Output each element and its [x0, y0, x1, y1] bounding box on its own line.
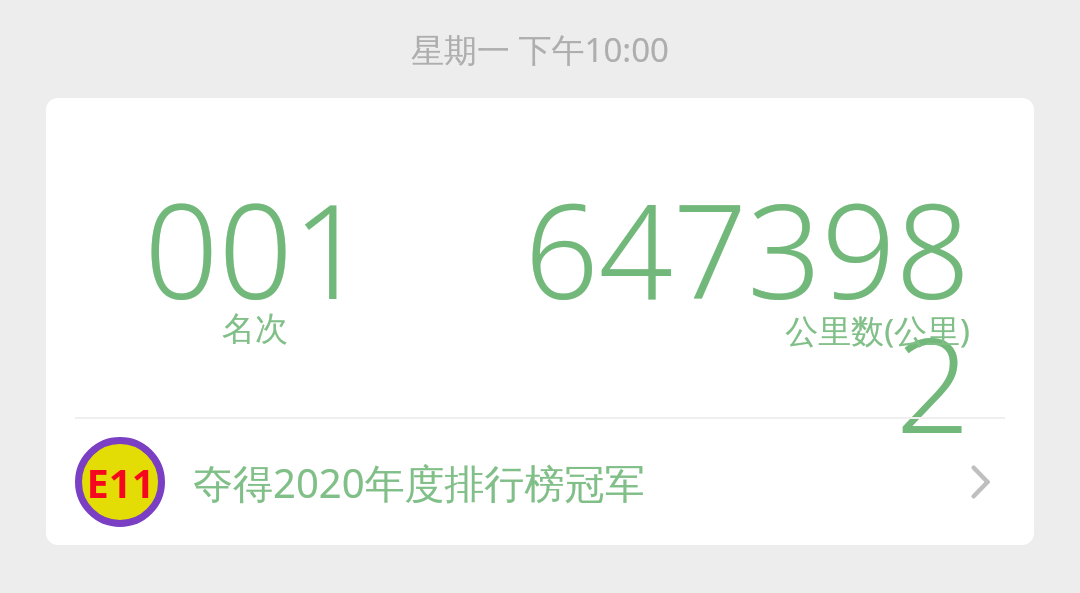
button[interactable]: 查看排行榜详情 [948, 450, 1012, 514]
staticText: 星期一 下午10:00 [411, 27, 669, 72]
button[interactable]: 001 [46, 98, 1034, 545]
staticText: 001 [144, 160, 367, 337]
button[interactable]: E11 [46, 419, 1034, 545]
staticText: 名次 [222, 308, 288, 350]
staticText: 6473982 [466, 160, 970, 471]
staticText: 公里数(公里) [785, 308, 970, 353]
staticText: E11 [86, 455, 155, 509]
staticText: 夺得2020年度排行榜冠军 [193, 455, 645, 510]
